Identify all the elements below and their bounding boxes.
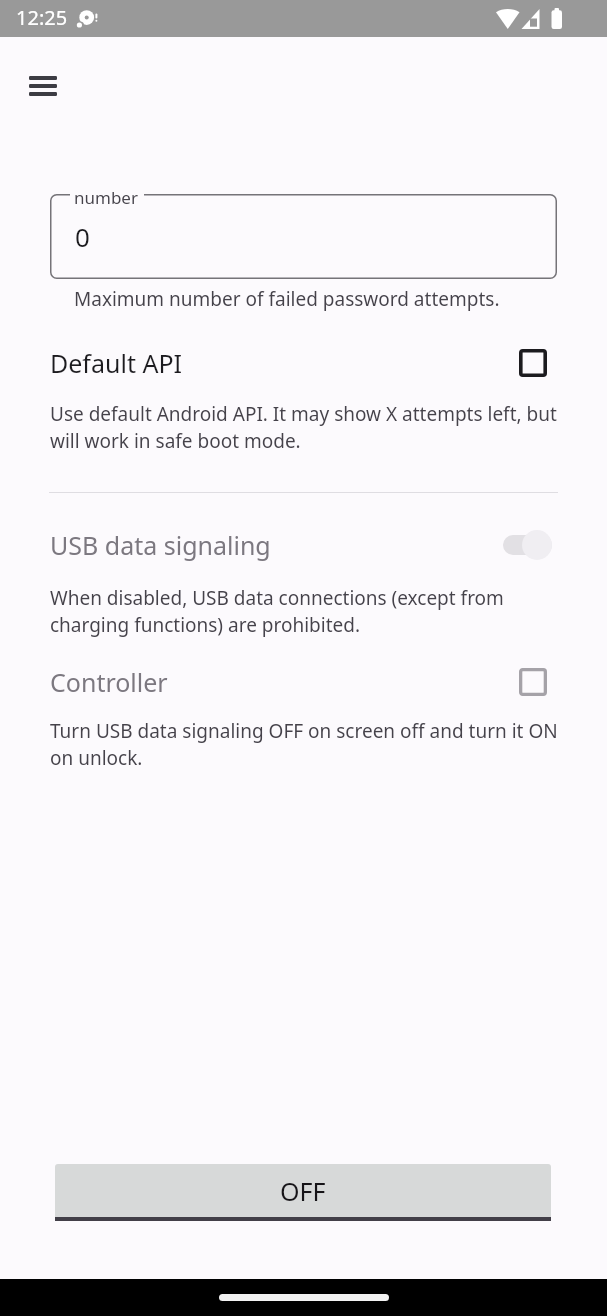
staticText: Turn USB data signaling OFF on screen of… xyxy=(50,718,558,771)
staticText: Controller xyxy=(50,665,168,699)
staticText: 12:25 xyxy=(16,4,68,31)
staticText: number xyxy=(74,186,138,209)
staticText: OFF xyxy=(280,1174,326,1208)
button[interactable]: OFF xyxy=(55,1164,551,1217)
button[interactable]: Open navigation menu xyxy=(15,58,71,114)
staticText: USB data signaling xyxy=(50,528,271,562)
button[interactable]: Default API xyxy=(0,340,607,386)
button[interactable]: USB data signaling xyxy=(0,522,607,568)
staticText: Use default Android API. It may show X a… xyxy=(50,401,558,454)
staticText: When disabled, USB data connections (exc… xyxy=(50,585,558,638)
staticText: 0 xyxy=(75,219,90,254)
staticText: Maximum number of failed password attemp… xyxy=(74,286,500,312)
button[interactable]: Controller xyxy=(0,659,607,705)
staticText: Default API xyxy=(50,346,182,380)
button[interactable] xyxy=(50,194,557,279)
